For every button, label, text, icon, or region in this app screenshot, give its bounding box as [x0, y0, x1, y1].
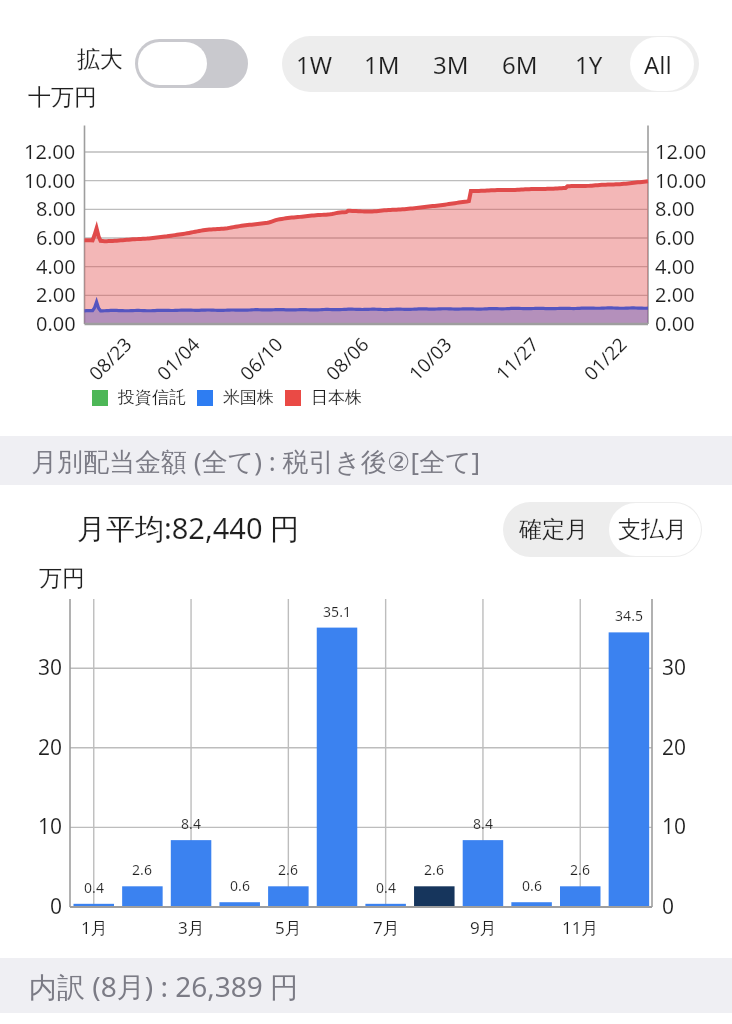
staticText: 投資信託: [118, 387, 186, 408]
staticText: 2.6: [570, 860, 590, 879]
button[interactable]: 6M: [486, 36, 554, 92]
staticText: 06/10: [234, 331, 288, 386]
staticText: 月別配当金額 (全て) : 税引き後②[全て]: [31, 443, 481, 479]
staticText: 0.4: [84, 878, 104, 897]
staticText: 2.6: [278, 860, 298, 879]
staticText: 34.5: [615, 606, 643, 625]
staticText: 3月: [178, 916, 205, 939]
staticText: 35.1: [323, 602, 351, 621]
staticText: 2.00: [36, 281, 76, 308]
staticText: 8.4: [181, 814, 201, 833]
staticText: 10/03: [403, 331, 457, 386]
button[interactable]: 拡大切り替え: [135, 39, 248, 88]
staticText: 30: [662, 653, 687, 682]
staticText: 1Y: [575, 48, 603, 81]
staticText: 0: [50, 892, 63, 921]
staticText: 米国株: [223, 387, 274, 408]
staticText: 0.00: [36, 310, 76, 337]
staticText: 01/22: [578, 331, 632, 386]
button[interactable]: 支払月: [603, 502, 702, 557]
staticText: 7月: [373, 916, 400, 939]
staticText: 08/06: [320, 331, 374, 386]
button[interactable]: 1M: [348, 36, 416, 92]
button[interactable]: 3M: [417, 36, 485, 92]
staticText: 万円: [39, 564, 85, 593]
staticText: 5月: [275, 916, 302, 939]
staticText: 12.00: [655, 138, 707, 165]
staticText: 11月: [562, 916, 599, 939]
staticText: 10.00: [655, 167, 707, 194]
staticText: 10.00: [24, 167, 76, 194]
staticText: 11/27: [490, 331, 544, 386]
staticText: 拡大: [77, 45, 123, 74]
staticText: 2.6: [424, 860, 444, 879]
staticText: 3M: [433, 48, 469, 81]
staticText: 12.00: [24, 138, 76, 165]
staticText: 6.00: [655, 224, 695, 251]
button[interactable]: 1Y: [555, 36, 623, 92]
staticText: 10: [662, 812, 687, 841]
staticText: 0.6: [522, 876, 542, 895]
staticText: 0.00: [655, 310, 695, 337]
staticText: 月平均:82,440 円: [77, 508, 300, 548]
staticText: 2.6: [132, 860, 152, 879]
staticText: 20: [38, 733, 63, 762]
staticText: 内訳 (8月) : 26,389 円: [29, 967, 299, 1005]
button[interactable]: All: [624, 36, 692, 92]
staticText: 2.00: [655, 281, 695, 308]
staticText: 4.00: [655, 253, 695, 280]
staticText: 6.00: [36, 224, 76, 251]
staticText: 10: [38, 812, 63, 841]
staticText: 08/23: [83, 331, 137, 386]
staticText: 6M: [502, 48, 538, 81]
staticText: 0: [662, 892, 675, 921]
staticText: All: [644, 48, 672, 81]
staticText: 1W: [296, 48, 333, 81]
staticText: 0.6: [230, 876, 250, 895]
staticText: 1月: [81, 916, 108, 939]
staticText: 4.00: [36, 253, 76, 280]
button[interactable]: 内訳 (8月) : 26,389 円: [0, 958, 732, 1013]
staticText: 1M: [364, 48, 400, 81]
button[interactable]: 確定月: [503, 502, 603, 557]
staticText: 確定月: [519, 515, 588, 544]
staticText: 20: [662, 733, 687, 762]
staticText: 日本株: [311, 387, 362, 408]
button[interactable]: 1W: [282, 36, 348, 92]
staticText: 9月: [470, 916, 497, 939]
staticText: 8.00: [655, 195, 695, 222]
staticText: 支払月: [618, 515, 687, 544]
staticText: 0.4: [376, 878, 396, 897]
staticText: 8.4: [473, 814, 493, 833]
staticText: 十万円: [28, 83, 97, 112]
button[interactable]: 月別配当金額 (全て) : 税引き後②[全て]: [0, 436, 732, 485]
staticText: 8.00: [36, 195, 76, 222]
staticText: 30: [38, 653, 63, 682]
staticText: 01/04: [151, 331, 205, 386]
